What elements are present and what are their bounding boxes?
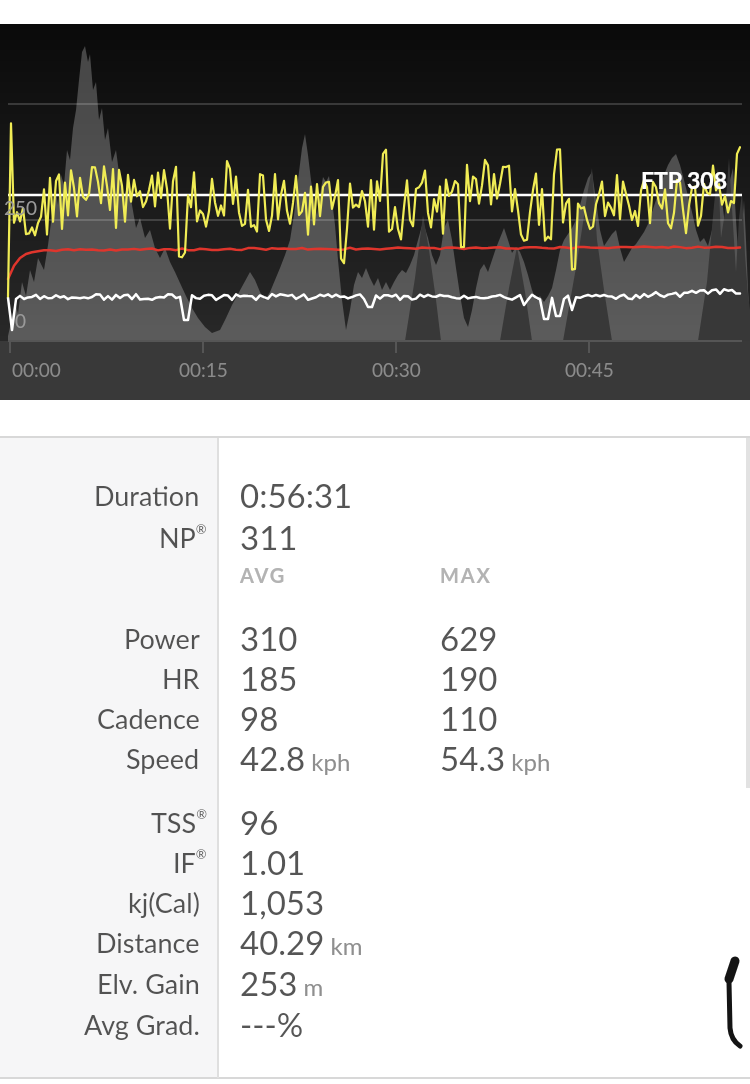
- staticText: 40.29 km: [240, 922, 363, 962]
- staticText: kj(Cal): [128, 886, 200, 918]
- staticText: 1,053: [240, 882, 325, 922]
- staticText: 00:15: [179, 358, 228, 381]
- staticText: 311: [240, 517, 298, 557]
- staticText: 96: [240, 802, 279, 842]
- staticText: 98: [240, 698, 279, 738]
- staticText: FTP 308: [641, 166, 728, 194]
- staticText: MAX: [440, 563, 492, 587]
- staticText: 185: [240, 658, 298, 698]
- staticText: Power: [124, 622, 200, 654]
- staticText: 190: [440, 658, 498, 698]
- staticText: NP®: [159, 521, 207, 554]
- staticText: 0: [15, 309, 27, 332]
- staticText: 00:30: [372, 358, 421, 381]
- staticText: Duration: [94, 479, 200, 511]
- staticText: IF®: [173, 846, 207, 879]
- staticText: 253 m: [240, 963, 324, 1003]
- staticText: Elv. Gain: [97, 967, 200, 999]
- staticText: 0:56:31: [240, 475, 353, 515]
- staticText: 110: [440, 698, 498, 738]
- staticText: 310: [240, 618, 298, 658]
- staticText: Avg Grad.: [84, 1008, 200, 1040]
- staticText: Cadence: [97, 702, 200, 734]
- staticText: 00:45: [565, 358, 614, 381]
- staticText: ---%: [240, 1004, 304, 1044]
- staticText: AVG: [240, 563, 287, 587]
- staticText: 42.8 kph: [240, 738, 351, 778]
- staticText: Speed: [126, 742, 200, 774]
- staticText: Distance: [96, 926, 200, 958]
- staticText: 00:00: [12, 358, 61, 381]
- button[interactable]: [0, 24, 750, 400]
- staticText: TSS®: [151, 806, 207, 839]
- staticText: 250: [4, 196, 38, 219]
- staticText: HR: [162, 662, 200, 694]
- staticText: 629: [440, 618, 498, 658]
- staticText: 1.01: [240, 842, 306, 882]
- staticText: 54.3 kph: [440, 738, 551, 778]
